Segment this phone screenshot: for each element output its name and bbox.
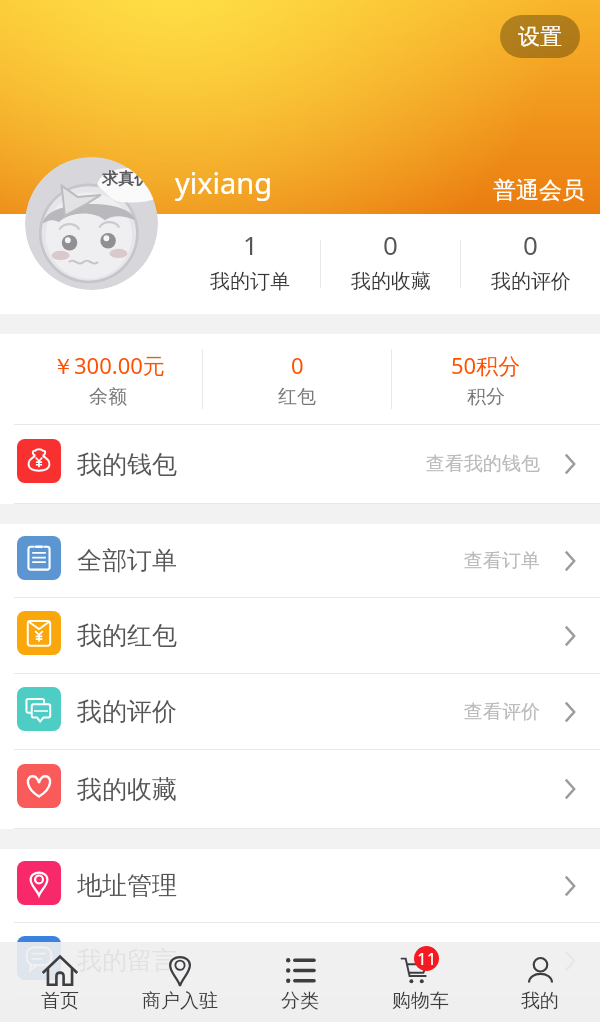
button[interactable]: 全部订单 [0, 524, 600, 598]
staticText: 地址管理 [77, 870, 177, 901]
staticText: 查看我的钱包 [426, 452, 540, 476]
button[interactable]: 11 [360, 942, 480, 1022]
staticText: ￥300.00元 [52, 350, 165, 380]
staticText: 0 [291, 350, 304, 380]
staticText: 50积分 [451, 350, 521, 380]
button[interactable]: 设置 [500, 15, 580, 58]
staticText: 我的订单 [210, 269, 290, 294]
button[interactable]: 0 [321, 210, 460, 310]
button[interactable]: 我的 [480, 942, 600, 1022]
staticText: 求真伪 [102, 169, 150, 189]
staticText: 分类 [281, 989, 319, 1013]
staticText: 11 [417, 947, 437, 970]
staticText: 我的评价 [77, 696, 177, 727]
button[interactable]: ￥300.00元 [14, 334, 202, 424]
button[interactable]: 1 [180, 210, 320, 310]
staticText: 购物车 [392, 989, 449, 1013]
staticText: 设置 [518, 23, 562, 51]
button[interactable]: Avatar [25, 157, 158, 290]
button[interactable]: 我的钱包 [0, 425, 600, 504]
staticText: 0 [383, 227, 398, 262]
button[interactable]: 0 [461, 210, 600, 310]
button[interactable]: 地址管理 [0, 849, 600, 923]
button[interactable]: 0 [203, 334, 391, 424]
button[interactable]: 分类 [240, 942, 360, 1022]
staticText: 红包 [278, 385, 316, 409]
staticText: 积分 [467, 385, 505, 409]
staticText: 0 [523, 227, 538, 262]
staticText: 我的 [521, 989, 559, 1013]
staticText: 查看订单 [464, 549, 540, 573]
button[interactable]: 商户入驻 [120, 942, 240, 1022]
staticText: 我的红包 [77, 620, 177, 651]
button[interactable]: 我的红包 [0, 598, 600, 674]
button[interactable]: 我的评价 [0, 674, 600, 750]
staticText: 我的留言 [77, 945, 177, 976]
staticText: 我的评价 [491, 269, 571, 294]
staticText: 全部订单 [77, 545, 177, 576]
staticText: yixiang [175, 163, 273, 202]
staticText: 我的收藏 [351, 269, 431, 294]
button[interactable]: 50积分 [392, 334, 580, 424]
staticText: 首页 [41, 989, 79, 1013]
staticText: 1 [243, 227, 258, 262]
button[interactable]: 我的收藏 [0, 750, 600, 829]
button[interactable]: 我的留言 [0, 923, 600, 999]
staticText: 我的收藏 [77, 774, 177, 805]
button[interactable]: 首页 [0, 942, 120, 1022]
staticText: 普通会员 [493, 176, 585, 205]
staticText: 我的钱包 [77, 449, 177, 480]
staticText: 查看评价 [464, 700, 540, 724]
staticText: 商户入驻 [142, 989, 218, 1013]
staticText: 余额 [89, 385, 127, 409]
